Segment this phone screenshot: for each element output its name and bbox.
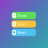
- button[interactable]: Done: [12, 12, 36, 19]
- staticText: Next: [17, 30, 25, 35]
- button[interactable]: Soon: [12, 20, 36, 28]
- staticText: Soon: [17, 21, 25, 27]
- staticText: Done: [17, 13, 26, 18]
- button[interactable]: Next: [12, 29, 36, 36]
